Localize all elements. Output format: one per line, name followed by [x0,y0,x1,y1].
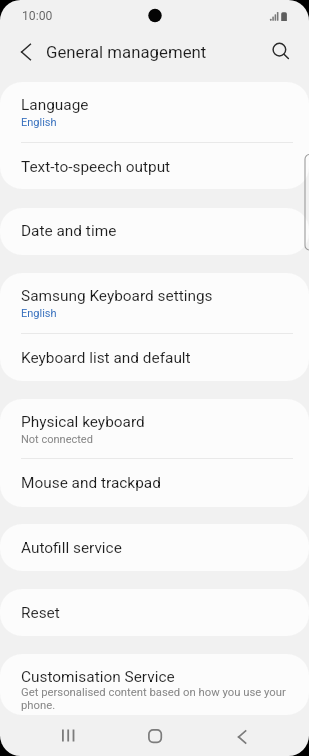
staticText: Customisation Service [21,668,175,686]
staticText: Mouse and trackpad [21,474,161,492]
staticText: Reset [21,604,60,622]
staticText: Get personalised content based on how yo… [21,686,289,712]
button[interactable]: Date and time [0,208,309,255]
staticText: Language [21,96,89,114]
button[interactable]: Mouse and trackpad [0,458,309,507]
button[interactable]: Recent apps [46,715,90,756]
button[interactable]: Customisation Service [0,654,309,715]
staticText: Date and time [21,222,117,240]
button[interactable]: Back [220,716,264,756]
staticText: General management [46,42,207,62]
button[interactable]: Autofill service [0,524,309,571]
button[interactable]: Samsung Keyboard settings [0,273,309,333]
button[interactable]: Text-to-speech output [0,142,309,189]
staticText: Not connected [21,433,93,446]
button[interactable]: Home [133,715,177,756]
staticText: Keyboard list and default [21,349,191,367]
staticText: Physical keyboard [21,413,145,431]
staticText: Samsung Keyboard settings [21,287,213,305]
staticText: Autofill service [21,539,122,557]
staticText: 10:00 [22,9,53,23]
button[interactable]: Keyboard list and default [0,333,309,381]
staticText: English [21,307,57,320]
button[interactable]: Search [262,33,300,71]
staticText: Text-to-speech output [21,158,171,176]
staticText: English [21,116,57,129]
button[interactable]: Navigate up [7,33,45,71]
button[interactable]: Reset [0,589,309,636]
button[interactable]: Language [0,82,309,142]
button[interactable]: Physical keyboard [0,399,309,458]
